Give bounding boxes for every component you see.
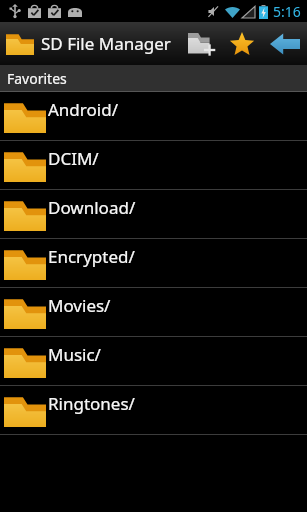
staticText: Download/ xyxy=(48,196,136,219)
button[interactable]: Back xyxy=(262,22,307,65)
button[interactable]: Android/ xyxy=(0,92,307,140)
button[interactable]: Ringtones/ xyxy=(0,386,307,434)
staticText: 5:16 xyxy=(273,2,301,21)
button[interactable]: Download/ xyxy=(0,190,307,238)
button[interactable]: Movies/ xyxy=(0,288,307,336)
button[interactable]: Music/ xyxy=(0,337,307,385)
staticText: SD File Manager xyxy=(41,32,171,55)
button[interactable]: Favorites xyxy=(222,22,262,65)
button[interactable]: Encrypted/ xyxy=(0,239,307,287)
staticText: Music/ xyxy=(48,343,101,366)
staticText: Favorites xyxy=(7,69,67,88)
staticText: Ringtones/ xyxy=(48,392,135,415)
staticText: Android/ xyxy=(48,98,118,121)
staticText: DCIM/ xyxy=(48,147,99,170)
staticText: Encrypted/ xyxy=(48,245,135,268)
button[interactable]: New folder xyxy=(180,22,222,65)
button[interactable]: SD File Manager xyxy=(0,22,175,65)
button[interactable]: DCIM/ xyxy=(0,141,307,189)
staticText: Movies/ xyxy=(48,294,111,317)
